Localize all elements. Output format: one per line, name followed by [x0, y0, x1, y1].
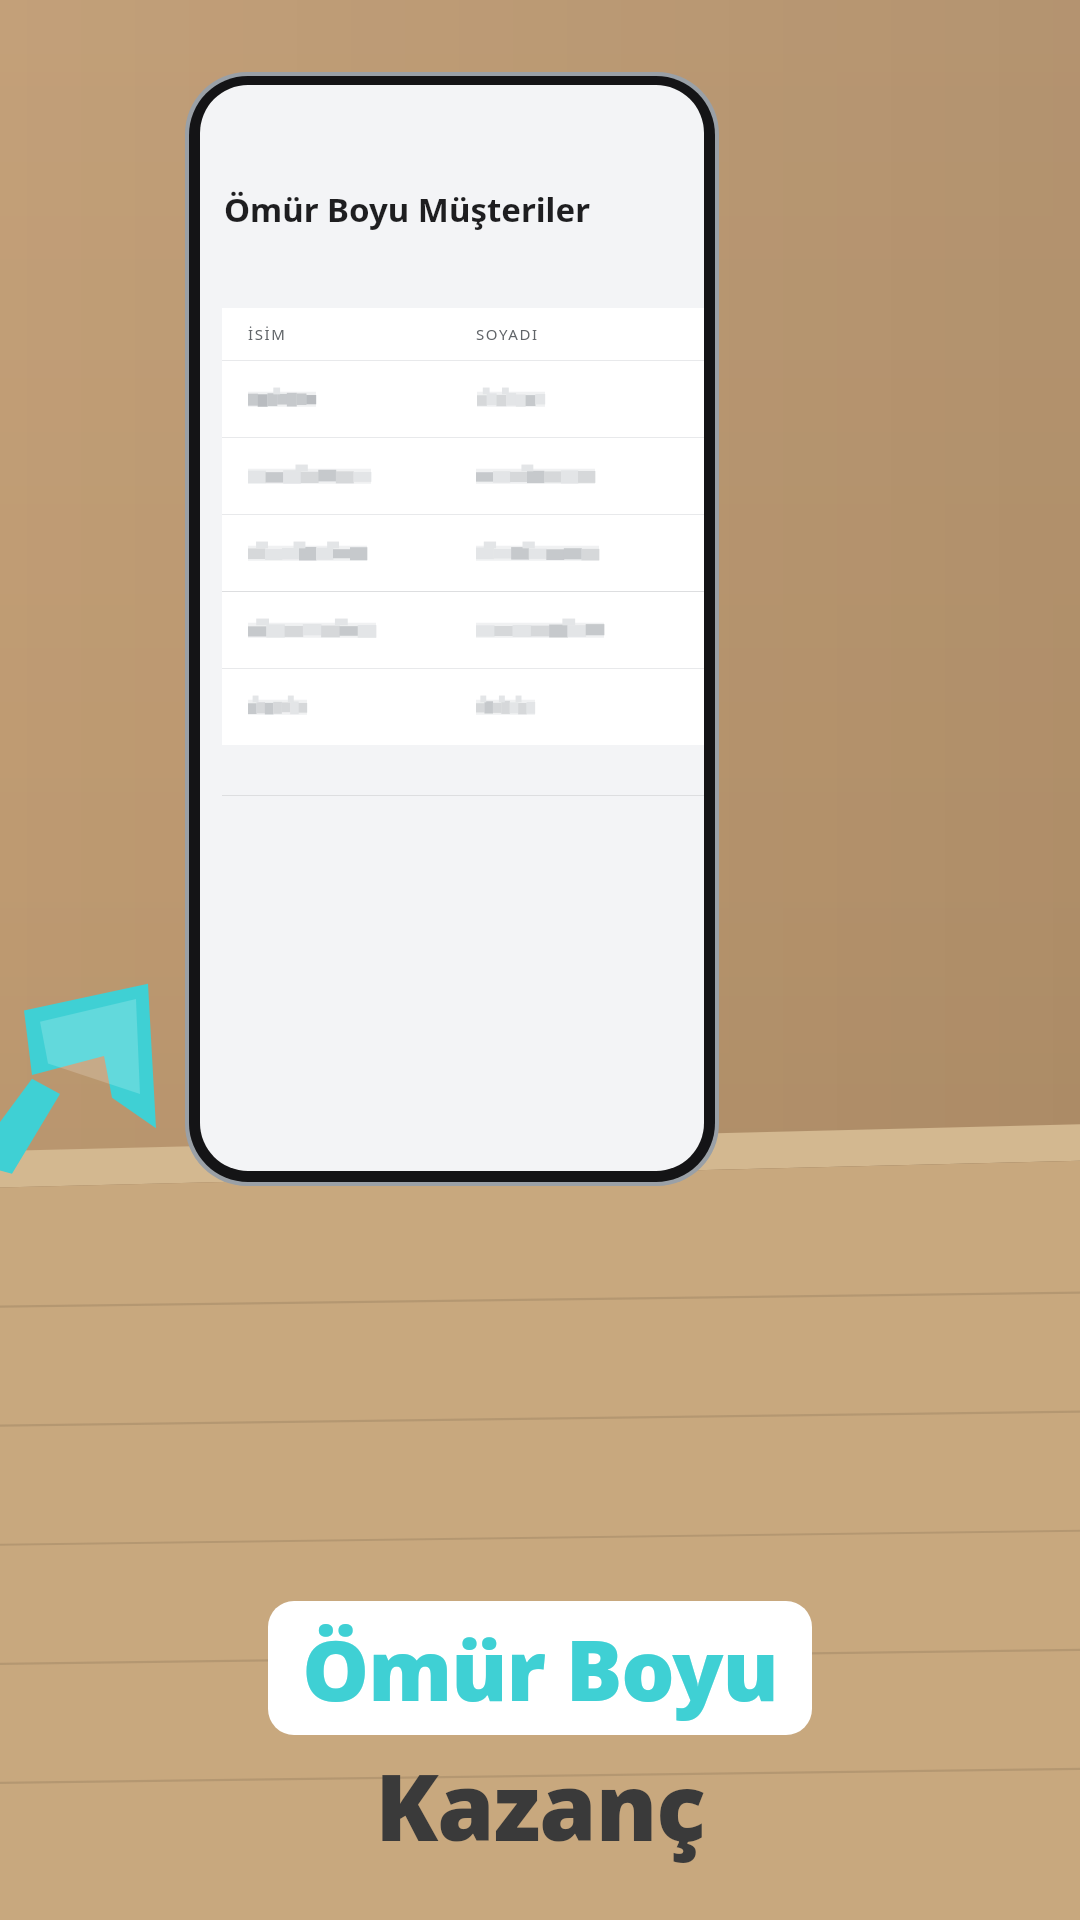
button[interactable]: [222, 515, 704, 591]
button[interactable]: [222, 592, 704, 668]
staticText: Kazanç: [375, 1743, 705, 1868]
button[interactable]: İSİM: [222, 308, 704, 360]
button[interactable]: [222, 361, 704, 437]
staticText: Ömür Boyu Müşteriler: [224, 187, 590, 232]
button[interactable]: [222, 438, 704, 514]
button[interactable]: [222, 669, 704, 745]
staticText: SOYADI: [476, 324, 539, 344]
staticText: Ömür Boyu: [302, 1611, 778, 1725]
staticText: İSİM: [248, 324, 287, 344]
